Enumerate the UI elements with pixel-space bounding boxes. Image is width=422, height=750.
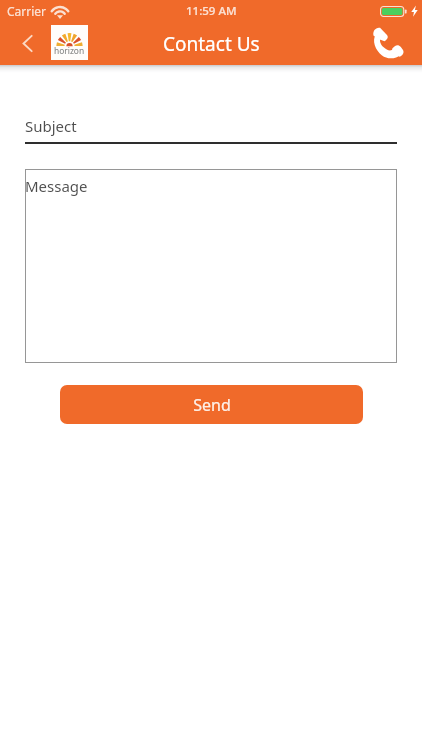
button[interactable]: Send bbox=[60, 385, 363, 424]
button[interactable]: Horizon home bbox=[51, 25, 88, 60]
staticText: horizon bbox=[54, 45, 85, 56]
staticText: Message bbox=[25, 176, 88, 196]
staticText: Send bbox=[193, 394, 231, 416]
staticText: Carrier bbox=[7, 3, 47, 19]
staticText: Subject bbox=[25, 116, 77, 136]
button[interactable]: Call bbox=[365, 21, 407, 63]
staticText: 11:59 AM bbox=[186, 3, 237, 19]
button[interactable]: Back bbox=[7, 23, 47, 63]
staticText: Contact Us bbox=[163, 31, 260, 57]
